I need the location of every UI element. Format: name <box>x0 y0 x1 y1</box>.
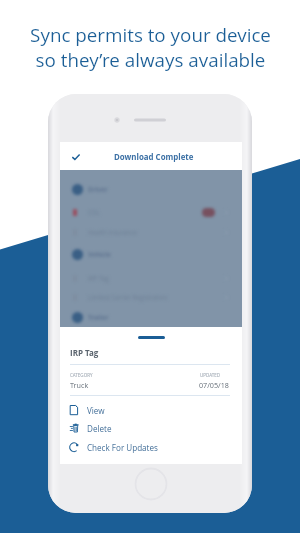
staticText: IRP Tag <box>70 347 99 358</box>
staticText: View <box>87 405 105 416</box>
button[interactable]: Download complete <box>68 149 84 165</box>
staticText: Check For Updates <box>87 442 158 453</box>
staticText: UPDATED <box>200 372 220 378</box>
staticText: Driver <box>88 185 108 194</box>
staticText: Sync permits to your device so they’re a… <box>30 22 271 72</box>
staticText: Download Complete <box>114 152 194 163</box>
staticText: Trailer <box>88 313 109 322</box>
button[interactable]: Delete <box>70 419 242 437</box>
button[interactable]: Check For Updates <box>70 438 242 456</box>
button[interactable]: View <box>70 401 242 419</box>
staticText: Vehicle <box>88 250 111 259</box>
staticText: Delete <box>87 423 112 434</box>
staticText: CATEGORY <box>70 372 93 378</box>
staticText: 07/05/18 <box>199 380 229 390</box>
staticText: Truck <box>70 380 89 390</box>
